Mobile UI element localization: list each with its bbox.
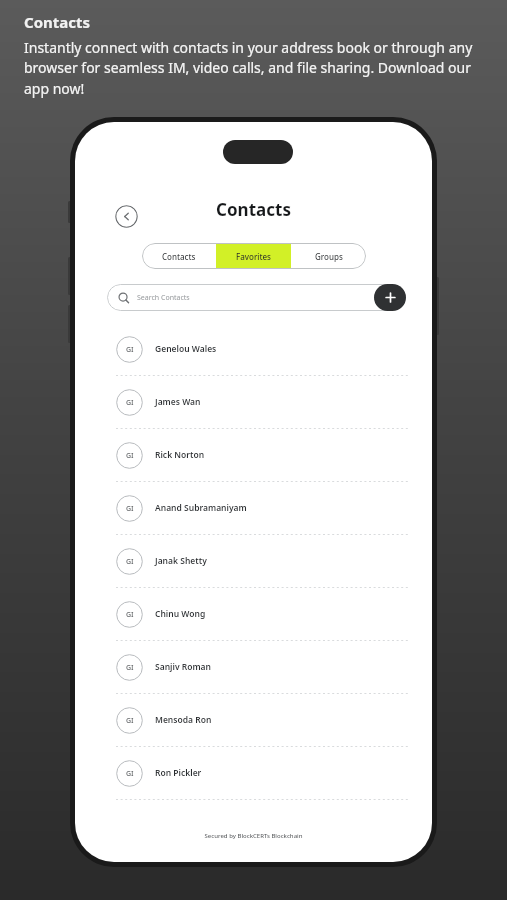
button[interactable]: Search Contacts [107, 284, 403, 311]
staticText: GI [126, 769, 134, 779]
staticText: Instantly connect with contacts in your … [24, 38, 489, 99]
button[interactable]: GI [75, 487, 432, 540]
button[interactable]: GI [75, 646, 432, 699]
staticText: Chinu Wong [155, 608, 206, 620]
button[interactable]: GI [75, 381, 432, 434]
button[interactable]: Groups [291, 243, 366, 269]
staticText: GI [126, 451, 134, 461]
staticText: GI [126, 716, 134, 726]
staticText: Groups [315, 251, 343, 262]
staticText: Mensoda Ron [155, 714, 212, 726]
staticText: Contacts [75, 198, 432, 221]
staticText: Favorites [236, 251, 271, 262]
button[interactable]: GI [75, 699, 432, 752]
staticText: Ron Pickler [155, 767, 202, 779]
button[interactable]: Back [115, 205, 138, 228]
button[interactable]: Contacts [142, 243, 216, 269]
button[interactable]: GI [75, 434, 432, 487]
staticText: Rick Norton [155, 449, 205, 461]
staticText: Sanjiv Roman [155, 661, 212, 673]
staticText: GI [126, 398, 134, 408]
staticText: GI [126, 557, 134, 567]
button[interactable]: GI [75, 328, 432, 381]
staticText: GI [126, 345, 134, 355]
button[interactable]: GI [75, 540, 432, 593]
staticText: Contacts [24, 12, 91, 32]
staticText: Contacts [162, 251, 196, 262]
button[interactable]: GI [75, 593, 432, 646]
staticText: Search Contacts [137, 293, 190, 303]
staticText: Secured by BlockCERTs Blockchain [75, 832, 432, 840]
button[interactable]: Favorites [216, 243, 291, 269]
button[interactable]: GI [75, 752, 432, 805]
staticText: Janak Shetty [155, 555, 207, 567]
staticText: James Wan [155, 396, 201, 408]
staticText: Anand Subramaniyam [155, 502, 247, 514]
staticText: Genelou Wales [155, 343, 217, 355]
staticText: GI [126, 663, 134, 673]
button[interactable]: Add contact [374, 284, 406, 311]
staticText: GI [126, 504, 134, 514]
staticText: GI [126, 610, 134, 620]
